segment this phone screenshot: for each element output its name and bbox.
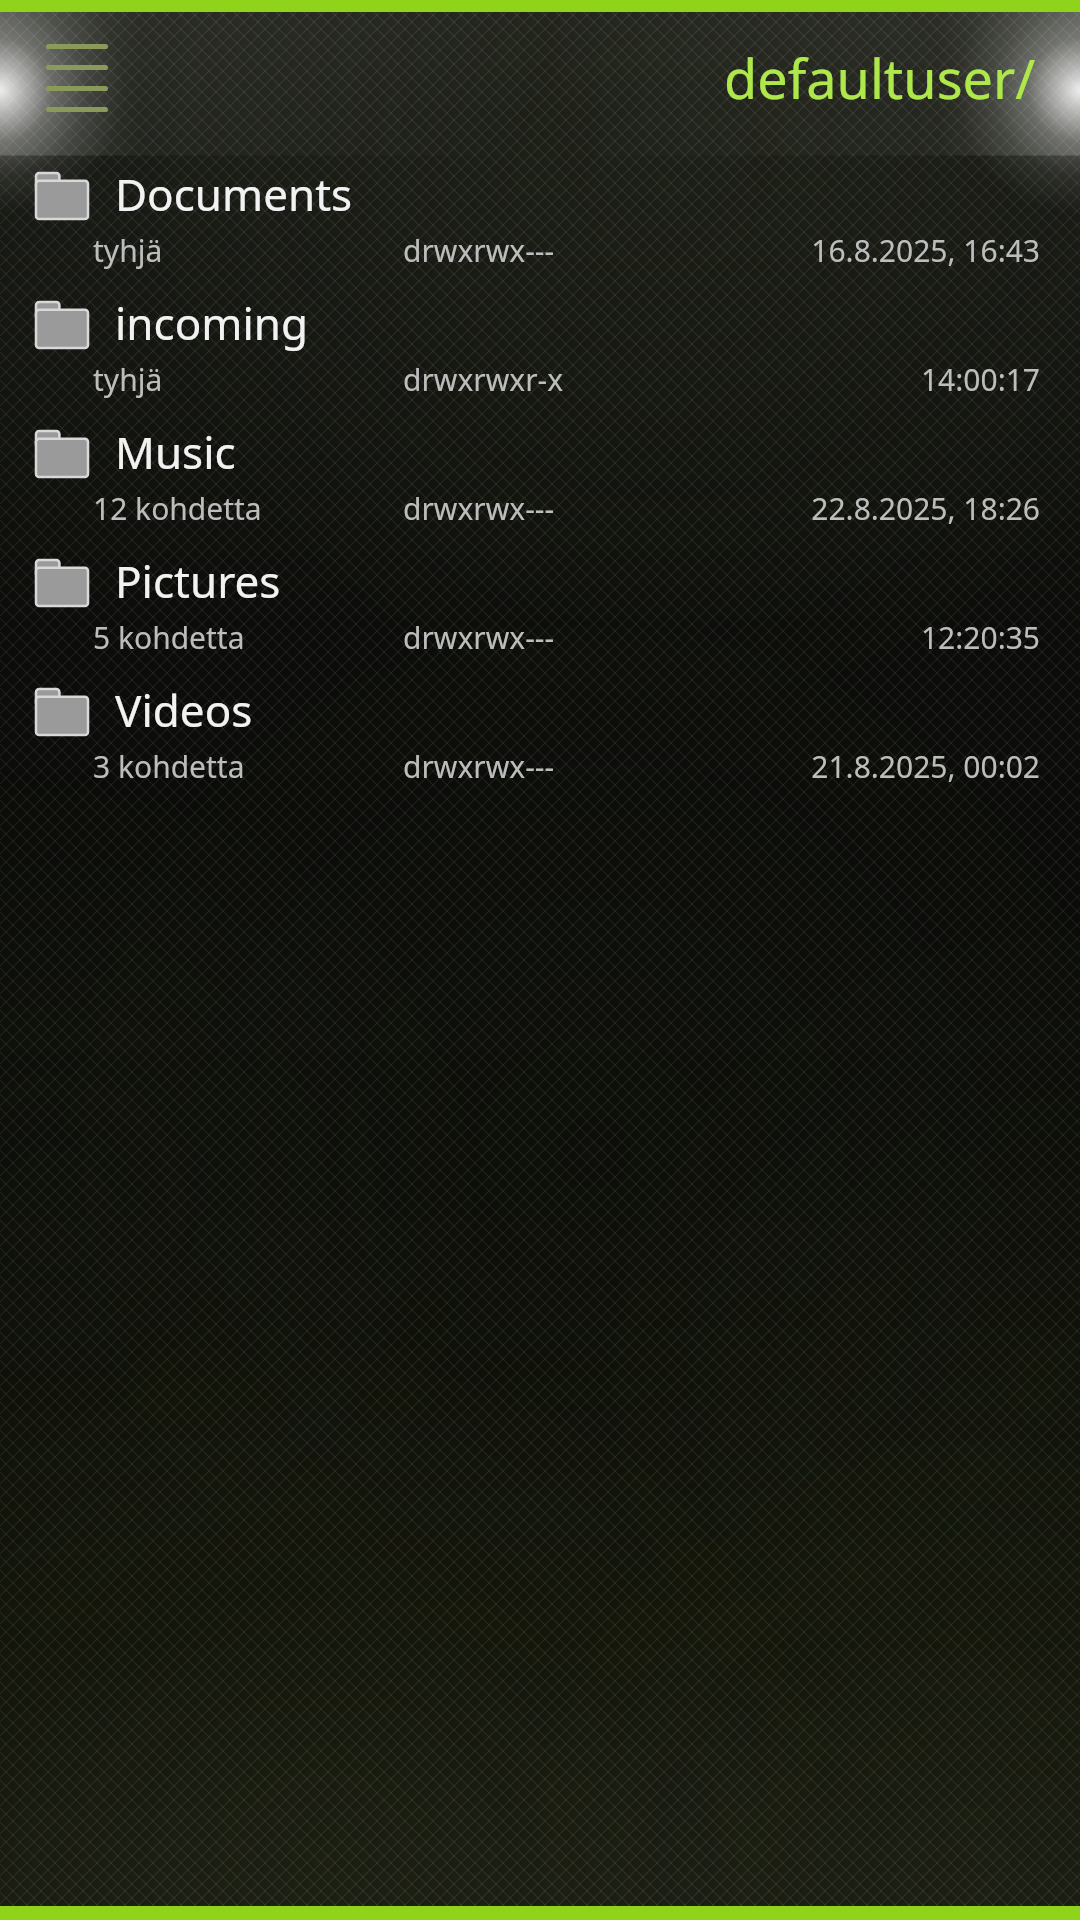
button[interactable]: incoming [0,293,1080,400]
button[interactable]: defaultuser/ [724,41,1036,115]
staticText: drwxrwx--- [403,488,648,529]
staticText: Music [115,422,236,482]
staticText: drwxrwx--- [403,746,648,787]
staticText: drwxrwxr-x [403,359,648,400]
staticText: 12 kohdetta [93,488,403,529]
staticText: 21.8.2025, 00:02 [648,746,1040,787]
staticText: Documents [115,164,353,224]
staticText: 3 kohdetta [93,746,403,787]
staticText: incoming [115,293,309,353]
button[interactable]: Videos [0,680,1080,787]
staticText: drwxrwx--- [403,230,648,271]
staticText: Pictures [115,551,281,611]
staticText: 12:20:35 [648,617,1040,658]
staticText: tyhjä [93,230,403,271]
staticText: 5 kohdetta [93,617,403,658]
staticText: Videos [115,680,253,740]
staticText: 16.8.2025, 16:43 [648,230,1040,271]
button[interactable]: Open navigation menu [46,44,108,112]
button[interactable]: Documents [0,164,1080,271]
staticText: tyhjä [93,359,403,400]
button[interactable]: Music [0,422,1080,529]
button[interactable]: Pictures [0,551,1080,658]
staticText: 22.8.2025, 18:26 [648,488,1040,529]
staticText: drwxrwx--- [403,617,648,658]
staticText: 14:00:17 [648,359,1040,400]
